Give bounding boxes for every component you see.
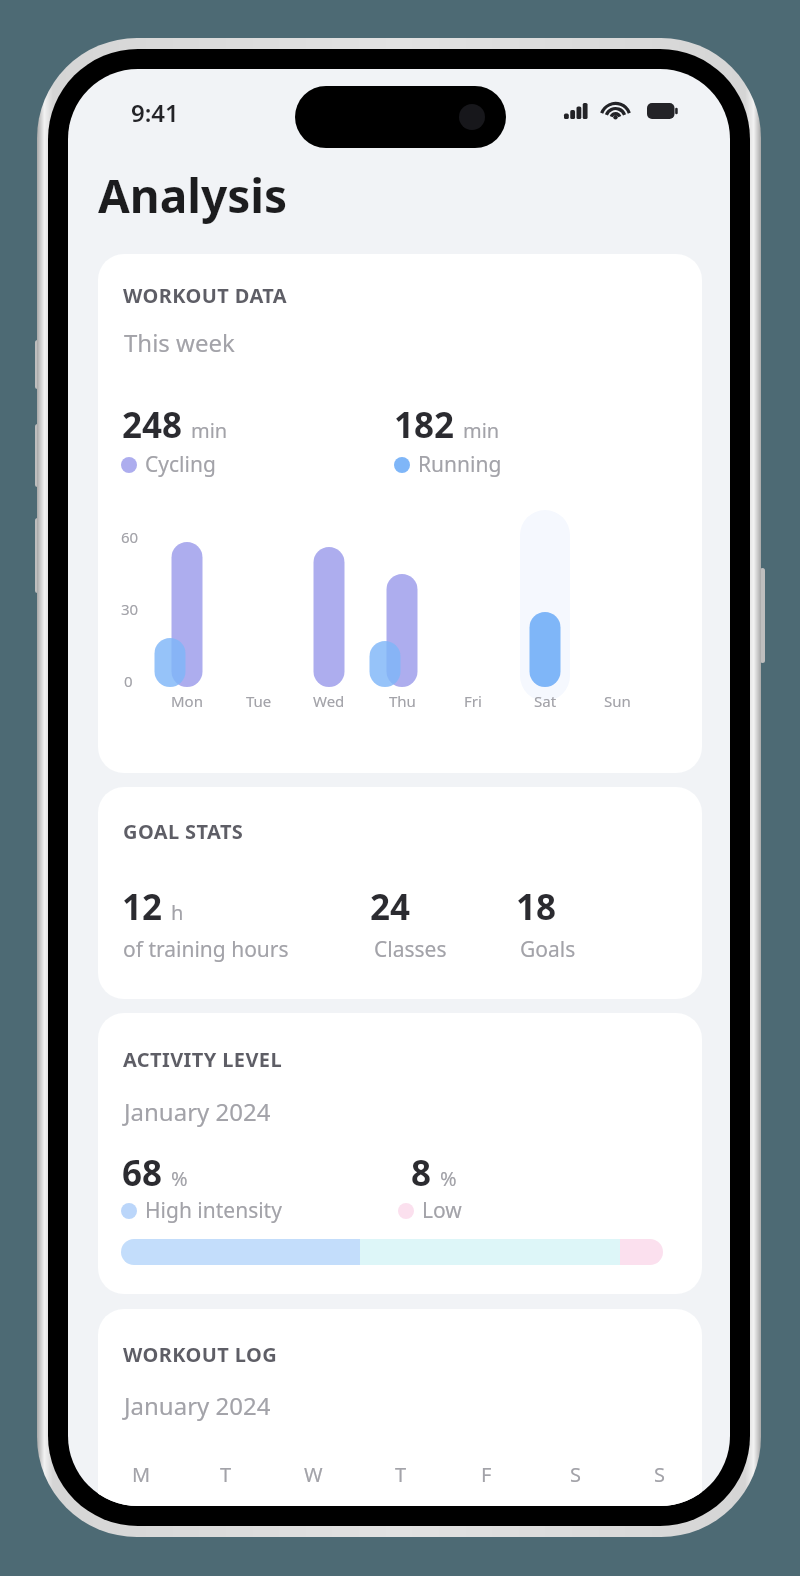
staticText: High intensity (145, 1196, 282, 1225)
staticText: W (304, 1461, 323, 1488)
staticText: Analysis (98, 164, 288, 227)
staticText: Thu (389, 691, 416, 711)
staticText: h (171, 899, 184, 926)
button[interactable]: ACTIVITY LEVEL (98, 1013, 702, 1294)
staticText: T (220, 1461, 232, 1488)
staticText: WORKOUT LOG (123, 1341, 278, 1368)
staticText: % (440, 1165, 457, 1192)
staticText: Tue (246, 691, 272, 711)
staticText: 182 (394, 401, 455, 449)
staticText: ACTIVITY LEVEL (123, 1046, 282, 1073)
staticText: 60 (121, 527, 139, 547)
staticText: Fri (464, 691, 482, 711)
staticText: This week (124, 326, 235, 359)
staticText: WORKOUT DATA (123, 282, 288, 309)
staticText: 18 (516, 883, 557, 931)
staticText: Classes (374, 935, 447, 964)
staticText: Sun (604, 691, 631, 711)
staticText: of training hours (123, 935, 289, 964)
staticText: 9:41 (131, 96, 179, 129)
staticText: min (463, 417, 500, 444)
staticText: Cycling (145, 450, 216, 479)
staticText: S (570, 1461, 581, 1488)
staticText: 248 (122, 401, 183, 449)
staticText: Mon (171, 691, 203, 711)
button[interactable]: GOAL STATS (98, 787, 702, 999)
staticText: 8 (411, 1149, 432, 1197)
staticText: T (395, 1461, 407, 1488)
staticText: 24 (370, 883, 411, 931)
staticText: % (171, 1165, 188, 1192)
staticText: Running (418, 450, 502, 479)
staticText: 0 (124, 671, 133, 691)
staticText: M (132, 1461, 151, 1488)
staticText: Sat (534, 691, 557, 711)
staticText: Goals (520, 935, 576, 964)
button[interactable]: WORKOUT DATA (98, 254, 702, 773)
button[interactable]: WORKOUT LOG (98, 1309, 702, 1506)
staticText: Wed (313, 691, 345, 711)
staticText: GOAL STATS (123, 818, 244, 845)
staticText: January 2024 (124, 1389, 271, 1422)
staticText: Low (422, 1196, 462, 1225)
staticText: min (191, 417, 228, 444)
staticText: 68 (122, 1149, 163, 1197)
staticText: S (654, 1461, 665, 1488)
staticText: 12 (122, 883, 163, 931)
staticText: January 2024 (124, 1095, 271, 1128)
staticText: F (481, 1461, 492, 1488)
staticText: 30 (121, 599, 139, 619)
